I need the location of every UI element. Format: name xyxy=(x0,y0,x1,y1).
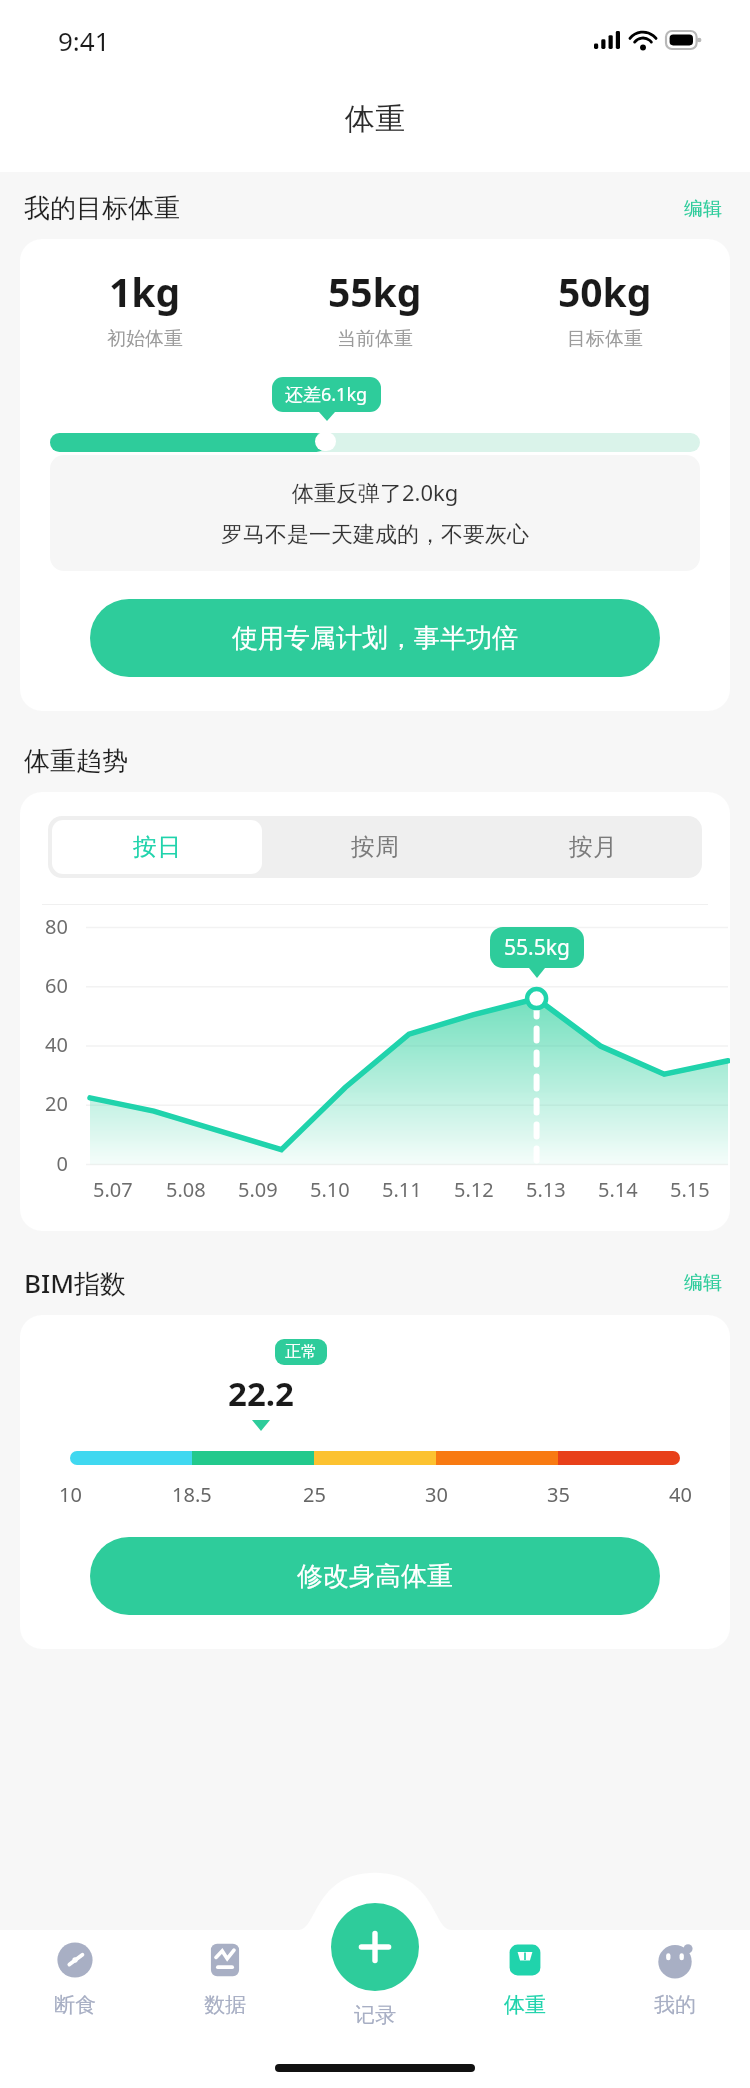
staticText: 修改身高体重 xyxy=(297,1560,453,1593)
staticText: 50kg xyxy=(558,265,652,318)
staticText: 按周 xyxy=(351,832,399,862)
staticText: 0 xyxy=(20,1150,68,1177)
staticText: 5.15 xyxy=(670,1176,710,1203)
staticText: 断食 xyxy=(54,1992,96,2018)
button[interactable]: 编辑 xyxy=(680,1267,726,1299)
staticText: 当前体重 xyxy=(337,327,413,351)
staticText: 10 xyxy=(59,1481,82,1508)
button[interactable]: 修改身高体重 xyxy=(90,1537,660,1615)
staticText: 25 xyxy=(303,1481,326,1508)
button[interactable]: 体重 xyxy=(450,1936,600,2020)
staticText: 22.2 xyxy=(228,1371,294,1416)
button[interactable]: 编辑 xyxy=(680,193,726,225)
staticText: 5.13 xyxy=(526,1176,566,1203)
staticText: 18.5 xyxy=(172,1481,212,1508)
staticText: 体重 xyxy=(0,100,750,138)
staticText: 体重趋势 xyxy=(24,745,128,778)
button[interactable]: 使用专属计划，事半功倍 xyxy=(90,599,660,677)
staticText: 正常 xyxy=(285,1342,317,1362)
staticText: 我的 xyxy=(654,1992,696,2018)
staticText: 40 xyxy=(20,1031,68,1058)
staticText: 20 xyxy=(20,1090,68,1117)
staticText: 数据 xyxy=(204,1992,246,2018)
button[interactable]: 数据 xyxy=(150,1936,300,2020)
staticText: 35 xyxy=(547,1481,570,1508)
staticText: 55.5kg xyxy=(504,933,570,962)
staticText: 按月 xyxy=(569,832,617,862)
staticText: 还差6.1kg xyxy=(285,382,368,407)
staticText: 60 xyxy=(20,972,68,999)
staticText: 初始体重 xyxy=(107,327,183,351)
staticText: 5.08 xyxy=(166,1176,206,1203)
button[interactable]: 我的 xyxy=(600,1936,750,2020)
staticText: 9:41 xyxy=(58,23,110,58)
staticText: 30 xyxy=(425,1481,448,1508)
staticText: 按日 xyxy=(133,832,181,862)
staticText: 40 xyxy=(669,1481,692,1508)
button[interactable]: 记录 xyxy=(331,1903,419,1991)
staticText: 体重 xyxy=(504,1992,546,2018)
staticText: 编辑 xyxy=(684,1271,722,1295)
staticText: 使用专属计划，事半功倍 xyxy=(232,622,518,655)
button[interactable]: 按日 xyxy=(52,820,262,874)
staticText: 目标体重 xyxy=(567,327,643,351)
staticText: 5.07 xyxy=(93,1176,133,1203)
staticText: 罗马不是一天建成的，不要灰心 xyxy=(221,521,529,549)
button[interactable]: 按月 xyxy=(488,820,698,874)
staticText: 5.14 xyxy=(598,1176,638,1203)
staticText: BIM指数 xyxy=(24,1265,127,1301)
staticText: 编辑 xyxy=(684,197,722,221)
staticText: 我的目标体重 xyxy=(24,192,180,225)
button[interactable]: 按周 xyxy=(270,820,480,874)
staticText: 5.09 xyxy=(238,1176,278,1203)
staticText: 55kg xyxy=(328,265,422,318)
staticText: 记录 xyxy=(354,2002,396,2028)
staticText: 5.12 xyxy=(454,1176,494,1203)
staticText: 1kg xyxy=(109,265,181,318)
staticText: 5.11 xyxy=(382,1176,422,1203)
button[interactable]: 断食 xyxy=(0,1936,150,2020)
staticText: 80 xyxy=(20,913,68,940)
staticText: 体重反弹了2.0kg xyxy=(292,477,459,507)
staticText: 5.10 xyxy=(310,1176,350,1203)
